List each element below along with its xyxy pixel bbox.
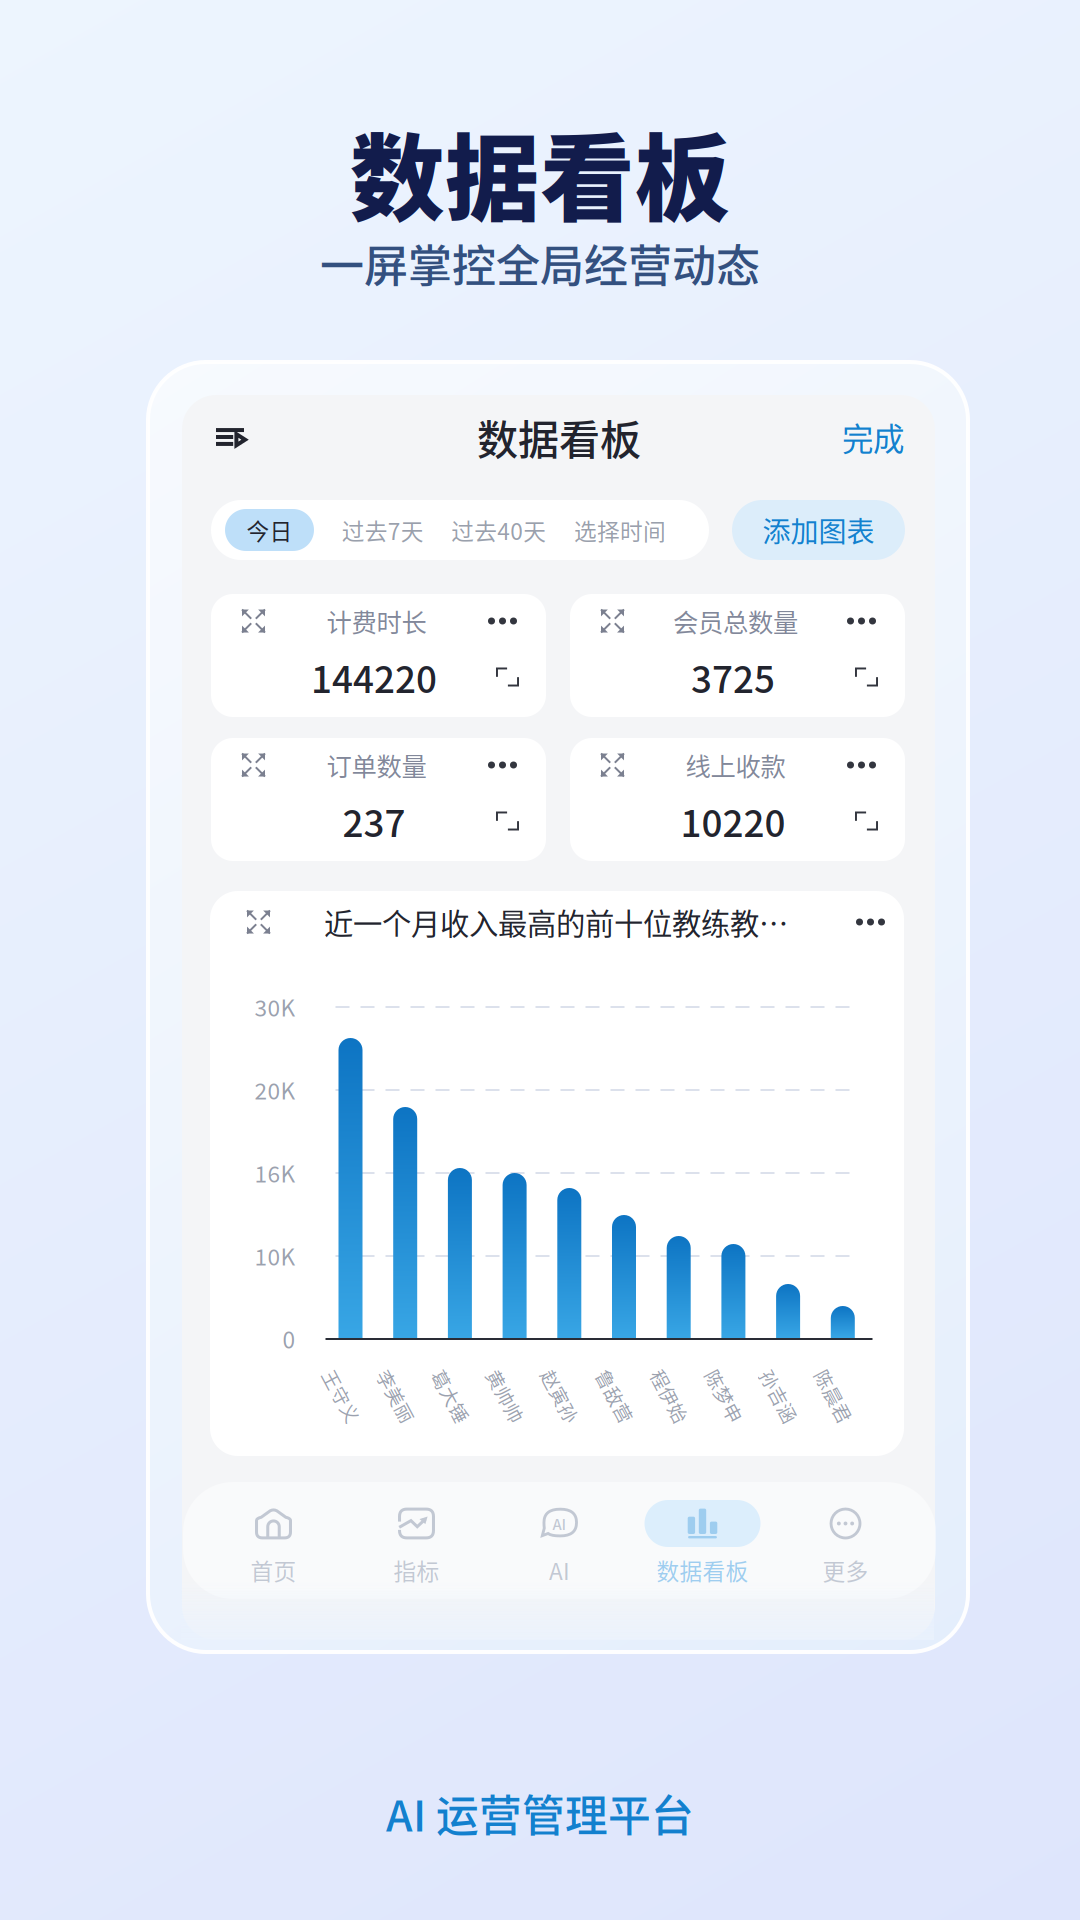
staticText: 葛大锤 (422, 1382, 479, 1409)
staticText: AI (549, 1554, 570, 1586)
button[interactable]: 首页 (202, 1500, 345, 1585)
staticText: 0 (282, 1322, 295, 1355)
button[interactable]: 指标 (345, 1500, 488, 1585)
staticText: 计费时长 (326, 603, 426, 639)
staticText: 近一个月收入最高的前十位教练教… (324, 901, 788, 943)
staticText: 会员总数量 (673, 603, 798, 639)
staticText: 首页 (250, 1554, 296, 1586)
staticText: 30K (254, 990, 295, 1023)
staticText: 指标 (393, 1554, 439, 1586)
staticText: 陈梦申 (696, 1382, 753, 1409)
staticText: 20K (254, 1073, 295, 1106)
button[interactable]: 数据看板 (631, 1500, 774, 1585)
staticText: 144220 (311, 650, 437, 704)
button[interactable]: 完成 (814, 406, 904, 468)
staticText: 黄帅帅 (477, 1382, 534, 1409)
staticText: 完成 (842, 414, 904, 460)
staticText: 数据看板 (477, 407, 641, 467)
staticText: 数据看板 (656, 1554, 748, 1586)
button[interactable]: 今日 (225, 509, 314, 551)
staticText: 赵寅孙 (532, 1382, 589, 1409)
button[interactable]: 更多 (774, 1500, 917, 1585)
staticText: 3725 (691, 650, 775, 704)
staticText: AI (552, 1513, 566, 1534)
staticText: 李美丽 (368, 1382, 425, 1409)
staticText: 过去7天 (342, 514, 424, 546)
staticText: 今日 (246, 514, 292, 546)
button[interactable]: 订单数量 (211, 738, 546, 861)
button[interactable]: 选择时间 (574, 514, 666, 546)
staticText: 更多 (822, 1554, 868, 1586)
staticText: 10220 (680, 794, 785, 848)
staticText: 数据看板 (350, 103, 730, 241)
staticText: 王守义 (313, 1382, 370, 1409)
button[interactable]: AI (488, 1500, 631, 1585)
staticText: 订单数量 (326, 747, 426, 783)
staticText: 237 (342, 794, 405, 848)
staticText: 线上收款 (685, 747, 785, 783)
staticText: 16K (254, 1156, 295, 1189)
button[interactable]: 线上收款 (570, 738, 905, 861)
staticText: AI 运营管理平台 (386, 1782, 694, 1844)
button[interactable]: 会员总数量 (570, 594, 905, 717)
staticText: 一屏掌控全局经营动态 (320, 231, 760, 295)
button[interactable]: Menu (211, 406, 304, 468)
staticText: 孙吉涵 (751, 1382, 808, 1409)
staticText: 过去40天 (451, 514, 546, 546)
button[interactable]: 添加图表 (732, 500, 905, 560)
button[interactable]: 计费时长 (211, 594, 546, 717)
staticText: 鲁敌营 (586, 1382, 643, 1409)
staticText: 程伊始 (641, 1382, 698, 1409)
staticText: 陈晨君 (805, 1382, 862, 1409)
staticText: 10K (254, 1239, 295, 1272)
button[interactable]: 过去40天 (451, 514, 546, 546)
staticText: 添加图表 (762, 510, 874, 550)
button[interactable]: 过去7天 (342, 514, 424, 546)
staticText: 选择时间 (574, 514, 666, 546)
